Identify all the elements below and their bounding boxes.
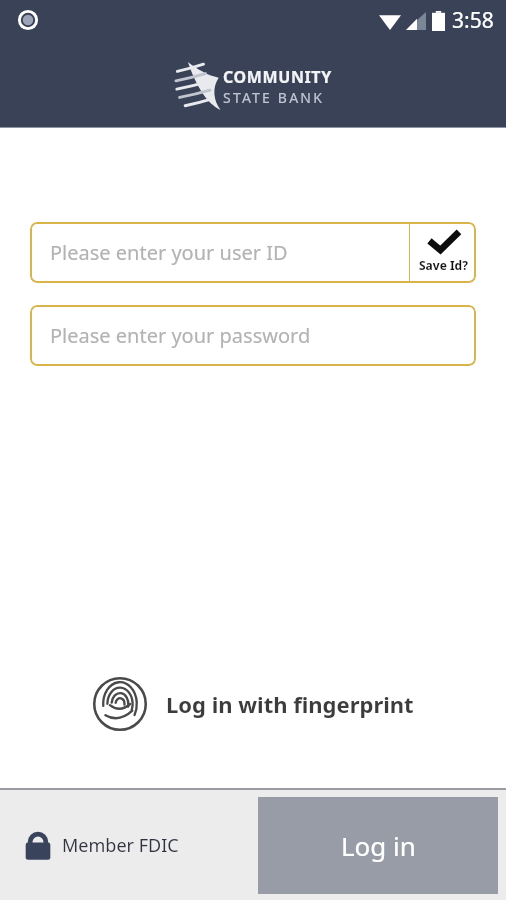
staticText: Log in with fingerprint <box>166 689 414 719</box>
button[interactable]: Save Id <box>410 222 476 283</box>
staticText: Please enter your password <box>50 322 311 349</box>
button[interactable]: Please enter your password <box>30 305 476 366</box>
button[interactable]: Log in with fingerprint <box>0 666 506 742</box>
button[interactable]: Please enter your user ID <box>30 222 409 283</box>
staticText: Member FDIC <box>62 833 179 858</box>
staticText: Please enter your user ID <box>50 239 288 266</box>
staticText: Save Id? <box>419 257 468 273</box>
button[interactable]: Log in <box>258 797 498 894</box>
staticText: STATE BANK <box>223 88 325 107</box>
button[interactable]: Member FDIC <box>24 829 179 861</box>
staticText: Log in <box>341 828 416 863</box>
staticText: COMMUNITY <box>223 66 332 88</box>
staticText: 3:58 <box>452 6 494 35</box>
